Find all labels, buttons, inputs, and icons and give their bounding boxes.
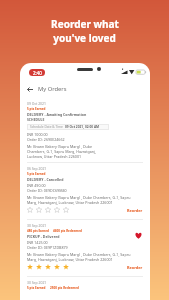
button[interactable]: Reorder	[127, 265, 143, 270]
staticText: Chambers, G-1, Sapru Marg, Hazratganj,	[27, 149, 96, 154]
staticText: 5 pts Earned	[27, 172, 46, 176]
staticText: 486 pts Earned	[27, 229, 49, 233]
button[interactable]: 30 Sep 2021	[27, 277, 143, 290]
staticText: PICKUP - Delivered	[27, 234, 60, 239]
staticText: Order ID: 2690E24662	[27, 137, 65, 142]
button[interactable]: Reorder	[127, 208, 143, 213]
staticText: 30 Sep 2021	[27, 280, 47, 285]
staticText: Marg, Hazratganj, Lucknow, Uttar Pradesh…	[27, 200, 113, 205]
staticText: Order ID: 0E9P1ZDB879	[27, 245, 68, 250]
staticText: 5 pts Earned	[27, 107, 46, 111]
staticText: DELIVERY - Awaiting Confirmation	[27, 112, 87, 117]
staticText: 4600 pts Redeemed	[53, 229, 82, 233]
staticText: SCHEDULE	[27, 117, 45, 122]
staticText: 30 Sep 2021	[27, 223, 47, 228]
staticText: DELIVERY - Cancelled	[27, 177, 64, 182]
staticText: Reorder	[127, 208, 143, 213]
button[interactable]: 09 Oct 2021	[27, 97, 143, 162]
staticText: 06 Sep 2021	[27, 166, 47, 171]
staticText: Reorder what	[51, 17, 119, 31]
staticText: INR 1425.00	[27, 240, 48, 245]
staticText: Marg, Hazratganj, Lucknow, Uttar Pradesh…	[27, 257, 113, 262]
staticText: Order ID: 0E9DC69M40	[27, 188, 67, 193]
staticText: 5 pts Earned	[27, 286, 46, 290]
staticText: 09 Oct 2021, 02:00 AM	[65, 125, 100, 129]
staticText: Mr. Brown Bakery (Sapru Marg) , Dube Cha…	[27, 252, 131, 257]
button[interactable]: Back	[25, 84, 35, 94]
staticText: INR 1000.00	[27, 132, 48, 137]
staticText: 09 Oct 2021	[27, 101, 46, 106]
staticText: My Orders	[38, 85, 67, 93]
staticText: Lucknow, Uttar Pradesh 226001	[27, 154, 82, 159]
staticText: INR 490.00	[27, 183, 46, 188]
staticText: Mr. Brown Bakery (Sapru Marg) , Dube	[27, 144, 93, 149]
button[interactable]: Favourite	[134, 231, 143, 240]
button[interactable]: 30 Sep 2021	[27, 220, 143, 276]
button[interactable]: 06 Sep 2021	[27, 163, 143, 219]
staticText: 2500 pts Redeemed	[50, 286, 79, 290]
staticText: you've loved	[53, 31, 116, 45]
staticText: Schedule Date & Time	[30, 125, 65, 129]
staticText: Mr. Brown Bakery (Sapru Marg) , Dube Cha…	[27, 195, 131, 200]
staticText: 2:40	[33, 70, 42, 76]
staticText: Reorder	[127, 265, 143, 270]
